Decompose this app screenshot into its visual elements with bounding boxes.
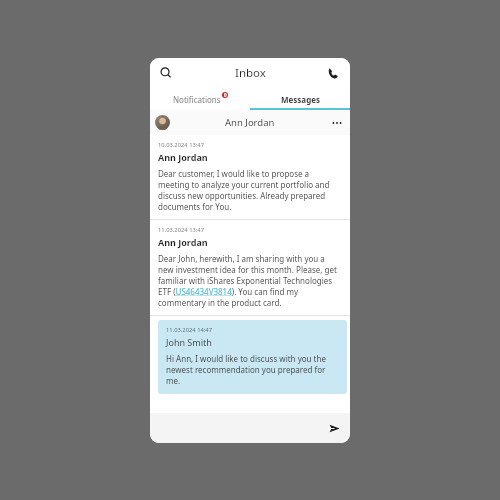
button[interactable]: Search [154, 61, 178, 85]
staticText: Messages [281, 94, 320, 105]
staticText: 11.03.2024 14:47 [166, 326, 212, 334]
staticText: Dear John, herewith, I am sharing with y… [158, 253, 342, 308]
staticText: 11.03.2024 13:47 [158, 226, 204, 234]
button[interactable]: Notifications [150, 88, 250, 110]
button[interactable]: 10.03.2024 13:47 [150, 135, 350, 219]
button[interactable]: More options [328, 114, 346, 132]
button[interactable]: Call [321, 61, 345, 85]
staticText: Hi Ann, I would like to discuss with you… [166, 353, 339, 386]
staticText: Inbox [235, 65, 266, 81]
button[interactable]: 11.03.2024 13:47 [150, 220, 350, 315]
staticText: Ann Jordan [158, 236, 208, 248]
staticText: 10.03.2024 13:47 [158, 141, 204, 149]
staticText: Ann Jordan [225, 116, 275, 129]
staticText: 0 [224, 92, 227, 98]
staticText: Ann Jordan [158, 151, 208, 163]
staticText: Dear customer, I would like to propose a… [158, 168, 342, 212]
button[interactable]: Ann Jordan [150, 110, 350, 135]
staticText: Notifications [173, 94, 221, 105]
button[interactable]: 11.03.2024 14:47 [158, 320, 347, 394]
staticText: John Smith [166, 336, 212, 348]
button[interactable]: Send [324, 418, 344, 438]
button[interactable]: Messages [250, 88, 350, 110]
